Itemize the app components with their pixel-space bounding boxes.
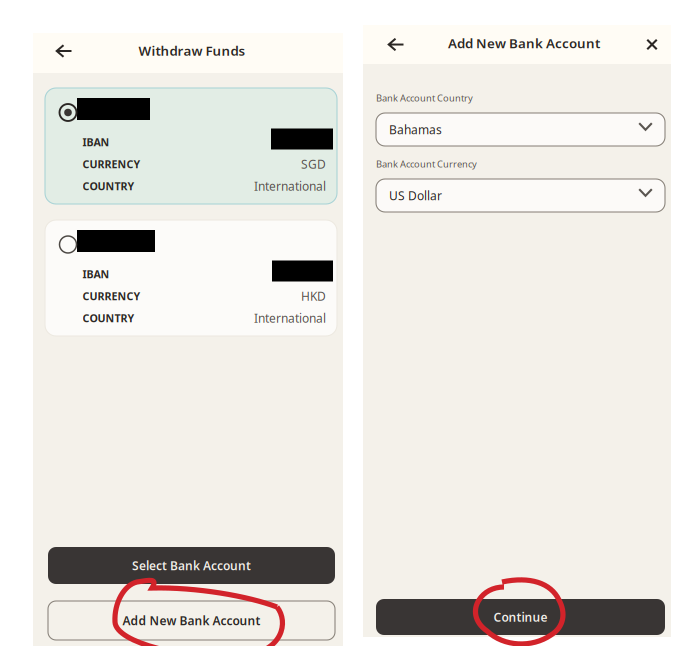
staticText: Select Bank Account [132, 557, 251, 573]
button[interactable]: IBAN [45, 220, 337, 336]
staticText: US Dollar [389, 187, 442, 203]
button[interactable]: Back [47, 31, 81, 71]
staticText: HKD [301, 288, 326, 304]
staticText: Add New Bank Account [448, 34, 600, 52]
staticText: CURRENCY [82, 157, 140, 171]
button[interactable]: IBAN [45, 88, 337, 204]
staticText: Continue [493, 609, 547, 625]
button[interactable]: US Dollar [376, 179, 665, 212]
staticText: International [254, 178, 326, 194]
staticText: Bank Account Currency [376, 158, 477, 170]
button[interactable]: Close [636, 25, 668, 64]
button[interactable]: Add New Bank Account [48, 601, 335, 640]
staticText: IBAN [82, 267, 109, 281]
staticText: Add New Bank Account [122, 612, 260, 628]
button[interactable]: Select Bank Account [48, 547, 335, 584]
staticText: IBAN [82, 135, 109, 149]
staticText: CURRENCY [82, 289, 140, 303]
button[interactable]: Continue [376, 599, 665, 635]
button[interactable]: Back [380, 25, 412, 64]
staticText: COUNTRY [82, 179, 134, 193]
staticText: SGD [301, 156, 326, 172]
staticText: Bank Account Country [376, 92, 473, 104]
staticText: Bahamas [389, 121, 442, 137]
button[interactable]: Bahamas [376, 113, 665, 146]
staticText: Withdraw Funds [138, 42, 245, 59]
staticText: International [254, 310, 326, 326]
staticText: COUNTRY [82, 311, 134, 325]
